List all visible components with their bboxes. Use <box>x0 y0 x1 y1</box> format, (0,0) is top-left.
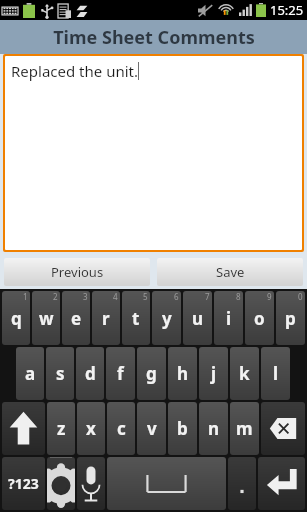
staticText: v <box>147 417 157 440</box>
button[interactable]: z <box>47 402 75 455</box>
staticText: 5 <box>143 291 148 302</box>
staticText: i <box>226 307 232 330</box>
staticText: t <box>132 307 140 330</box>
staticText: Save <box>216 263 245 281</box>
staticText: j <box>211 362 217 385</box>
staticText: f <box>117 362 124 385</box>
button[interactable]: n <box>199 402 228 455</box>
button[interactable]: Delete <box>261 402 305 455</box>
button[interactable]: u <box>183 291 212 345</box>
button[interactable]: p <box>276 291 305 345</box>
staticText: 4 <box>113 291 118 302</box>
staticText: 15:25 <box>270 1 304 19</box>
staticText: z <box>57 417 66 440</box>
staticText: Replaced the unit. <box>11 61 138 81</box>
staticText: d <box>85 362 96 385</box>
button[interactable]: Enter <box>258 457 305 510</box>
button[interactable]: f <box>106 347 135 400</box>
button[interactable]: Save <box>157 258 303 286</box>
button[interactable]: g <box>137 347 166 400</box>
staticText: 3 <box>83 291 88 302</box>
staticText: Time Sheet Comments <box>53 25 255 50</box>
staticText: k <box>239 362 250 385</box>
button[interactable]: Shift <box>2 402 45 455</box>
button[interactable]: Voice input <box>77 457 105 510</box>
staticText: n <box>208 417 220 440</box>
staticText: ?123 <box>8 474 39 493</box>
button[interactable]: q <box>2 291 30 345</box>
button[interactable]: h <box>168 347 197 400</box>
staticText: Previous <box>51 263 104 281</box>
staticText: p <box>285 307 296 330</box>
button[interactable]: m <box>230 402 259 455</box>
button[interactable]: Period <box>228 457 256 510</box>
button[interactable]: b <box>168 402 197 455</box>
staticText: 0 <box>298 291 303 302</box>
button[interactable]: x <box>77 402 105 455</box>
button[interactable]: c <box>107 402 135 455</box>
button[interactable]: t <box>122 291 150 345</box>
button[interactable]: Space <box>107 457 226 510</box>
staticText: a <box>25 362 36 385</box>
button[interactable]: k <box>230 347 259 400</box>
staticText: x <box>86 417 96 440</box>
staticText: c <box>117 417 126 440</box>
button[interactable]: e <box>62 291 90 345</box>
button[interactable]: w <box>32 291 60 345</box>
staticText: 9 <box>267 291 272 302</box>
staticText: 1 <box>23 291 28 302</box>
button[interactable]: s <box>46 347 74 400</box>
staticText: g <box>146 362 157 385</box>
staticText: 6 <box>174 291 179 302</box>
staticText: b <box>177 417 188 440</box>
staticText: l <box>273 362 279 385</box>
staticText: q <box>11 307 22 330</box>
staticText: o <box>254 307 265 330</box>
staticText: w <box>39 307 54 330</box>
staticText: m <box>236 417 253 440</box>
button[interactable]: j <box>199 347 228 400</box>
staticText: 2 <box>53 291 58 302</box>
staticText: 7 <box>205 291 210 302</box>
button[interactable]: o <box>245 291 274 345</box>
button[interactable]: d <box>76 347 104 400</box>
staticText: e <box>71 307 82 330</box>
staticText: h <box>177 362 189 385</box>
button[interactable]: v <box>137 402 166 455</box>
button[interactable]: r <box>92 291 120 345</box>
staticText: u <box>192 307 204 330</box>
button[interactable]: a <box>16 347 44 400</box>
button[interactable]: i <box>214 291 243 345</box>
staticText: y <box>162 307 172 330</box>
button[interactable]: ?123 <box>2 457 45 510</box>
button[interactable]: Settings <box>47 457 75 510</box>
staticText: 8 <box>236 291 241 302</box>
button[interactable]: Replaced the unit. <box>5 56 302 250</box>
button[interactable]: l <box>261 347 290 400</box>
button[interactable]: y <box>152 291 181 345</box>
staticText: r <box>102 307 110 330</box>
button[interactable]: Previous <box>4 258 150 286</box>
staticText: s <box>56 362 65 385</box>
